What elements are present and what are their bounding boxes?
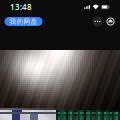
staticText: 13:48: [10, 2, 32, 12]
staticText: 我的网盘: [9, 17, 37, 26]
button[interactable]: 我的网盘: [4, 17, 42, 26]
button[interactable]: More: [92, 16, 102, 26]
button[interactable]: Account: [105, 16, 115, 26]
